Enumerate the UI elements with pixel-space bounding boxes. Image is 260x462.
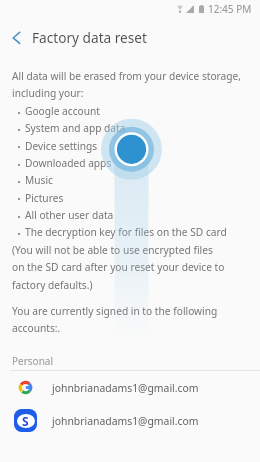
staticText: on the SD card after you reset your devi… [12, 259, 225, 275]
staticText: The decryption key for files on the SD c… [25, 224, 227, 240]
staticText: You are currently signed in to the follo… [12, 303, 218, 319]
staticText: johnbrianadams1@gmail.com [52, 381, 199, 395]
staticText: Music [25, 172, 53, 188]
staticText: All other user data [25, 207, 114, 223]
staticText: johnbrianadams1@gmail.com [52, 414, 199, 428]
staticText: factory defaults.) [12, 277, 93, 293]
button[interactable]: johnbrianadams1@gmail.com [0, 371, 260, 404]
staticText: Downloaded apps [25, 155, 112, 171]
staticText: accounts:. [12, 320, 61, 336]
staticText: Device settings [25, 138, 98, 154]
button[interactable]: S [0, 404, 260, 437]
staticText: 12:45 PM [208, 2, 252, 16]
staticText: S [22, 413, 29, 429]
staticText: Google account [25, 103, 100, 119]
staticText: Personal [12, 354, 54, 368]
staticText: Pictures [25, 190, 64, 206]
staticText: including your: [12, 85, 84, 101]
staticText: All data will be erased from your device… [12, 68, 242, 84]
button[interactable]: Back [5, 24, 29, 48]
staticText: (You will not be able to use encrypted f… [12, 242, 213, 258]
staticText: System and app data [25, 120, 126, 136]
staticText: Factory data reset [32, 28, 147, 47]
